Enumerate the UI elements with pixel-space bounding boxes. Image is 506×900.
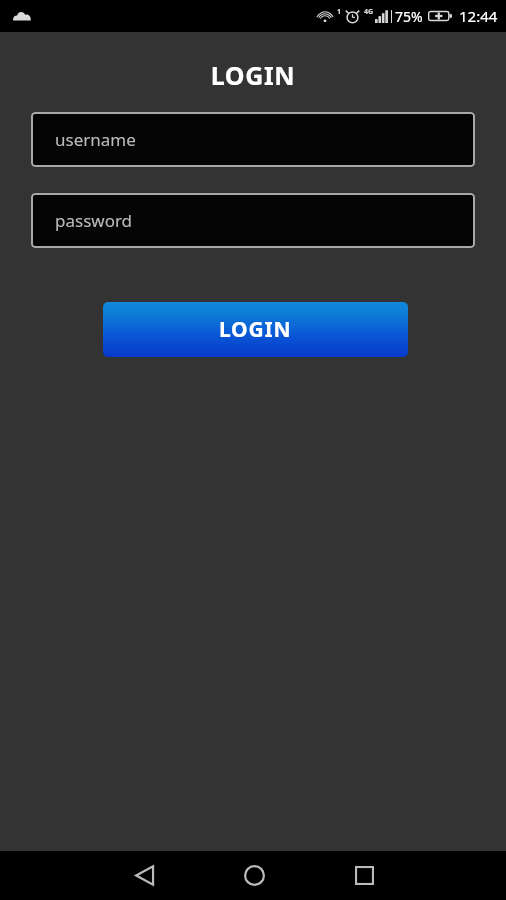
staticText: LOGIN [0,58,506,92]
staticText: username [55,128,136,151]
button[interactable]: Home [228,851,280,900]
staticText: password [55,209,133,232]
staticText: LOGIN [219,315,292,344]
button[interactable]: username [31,112,475,167]
button[interactable]: LOGIN [103,302,408,357]
staticText: 12:44 [459,6,498,26]
button[interactable]: password [31,193,475,248]
staticText: 4G [364,7,374,17]
button[interactable]: Back [118,851,170,900]
staticText: 75% [395,7,423,26]
button[interactable]: Recent apps [338,851,390,900]
staticText: 1 [337,7,342,17]
